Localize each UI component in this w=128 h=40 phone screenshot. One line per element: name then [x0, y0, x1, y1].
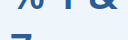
staticText: % 1 & 7: [10, 0, 118, 40]
